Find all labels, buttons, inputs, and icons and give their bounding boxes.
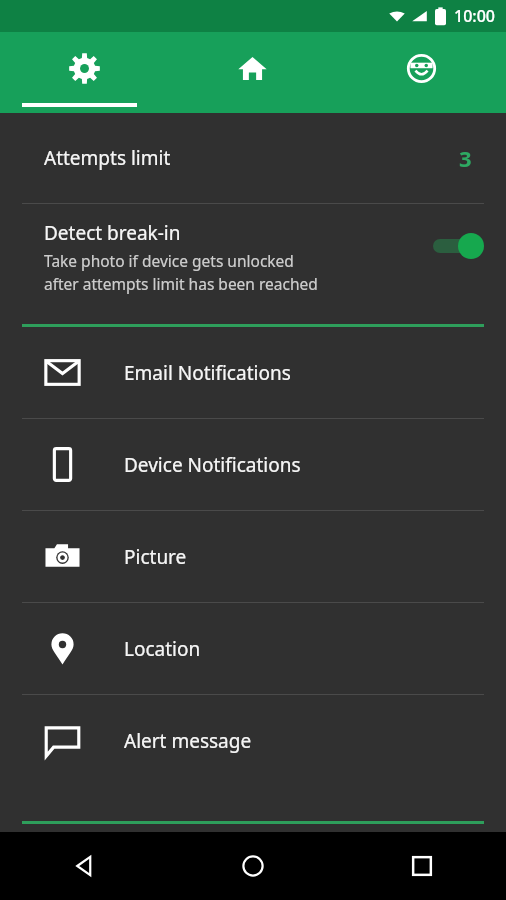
button[interactable]: Alert message: [0, 695, 506, 786]
button[interactable]: Recents: [337, 832, 506, 900]
button[interactable]: Back: [0, 832, 168, 900]
button[interactable]: Device Notifications: [0, 419, 506, 510]
button[interactable]: Home: [168, 832, 337, 900]
button[interactable]: Picture: [0, 511, 506, 602]
staticText: 10:00: [454, 5, 495, 27]
staticText: Location: [124, 636, 201, 662]
staticText: Detect break-in: [44, 220, 181, 246]
staticText: Email Notifications: [124, 360, 291, 386]
button[interactable]: Attempts limit: [0, 113, 506, 203]
staticText: 3: [459, 143, 472, 173]
button[interactable]: Intruder tab: [337, 32, 506, 113]
staticText: Take photo if device gets unlocked: [44, 250, 294, 271]
button[interactable]: Email Notifications: [0, 327, 506, 418]
staticText: Device Notifications: [124, 452, 301, 478]
button[interactable]: Detect break-in toggle: [432, 232, 484, 260]
button[interactable]: Settings tab: [0, 32, 168, 113]
button[interactable]: Home tab: [168, 32, 337, 113]
staticText: Picture: [124, 544, 187, 570]
button[interactable]: Detect break-in: [0, 204, 506, 306]
staticText: Attempts limit: [44, 145, 171, 171]
staticText: after attempts limit has been reached: [44, 273, 318, 294]
staticText: Alert message: [124, 728, 252, 754]
button[interactable]: Location: [0, 603, 506, 694]
